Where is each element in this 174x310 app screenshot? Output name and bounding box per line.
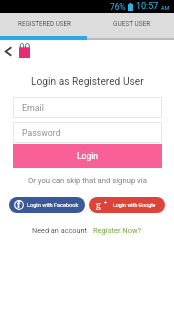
- staticText: g: [96, 198, 101, 210]
- button[interactable]: f: [9, 197, 85, 213]
- button[interactable]: Email: [13, 97, 162, 118]
- staticText: Login with Facebook: [27, 202, 79, 209]
- staticText: Need an account: [32, 226, 87, 235]
- staticText: GUEST USER: [113, 20, 151, 28]
- staticText: Login as Registered User: [31, 76, 144, 88]
- button[interactable]: g: [89, 197, 165, 213]
- staticText: f: [17, 200, 21, 210]
- button[interactable]: Password: [13, 122, 162, 143]
- staticText: Login with Google: [113, 202, 156, 208]
- staticText: Login: [77, 151, 98, 161]
- staticText: Register Now?: [93, 226, 142, 235]
- button[interactable]: Back: [1, 44, 15, 58]
- button[interactable]: Login: [13, 144, 162, 168]
- button[interactable]: REGISTERED USER: [0, 13, 87, 36]
- staticText: REGISTERED USER: [18, 20, 71, 27]
- staticText: +: [104, 199, 107, 205]
- button[interactable]: Register Now?: [93, 226, 142, 235]
- staticText: 76%: [110, 2, 126, 12]
- staticText: Email: [22, 103, 44, 113]
- staticText: Or you can skip that and signup via: [28, 176, 147, 185]
- button[interactable]: GUEST USER: [87, 13, 174, 36]
- staticText: 10:57: [136, 1, 159, 12]
- staticText: Password: [22, 128, 61, 138]
- staticText: AM: [161, 5, 170, 11]
